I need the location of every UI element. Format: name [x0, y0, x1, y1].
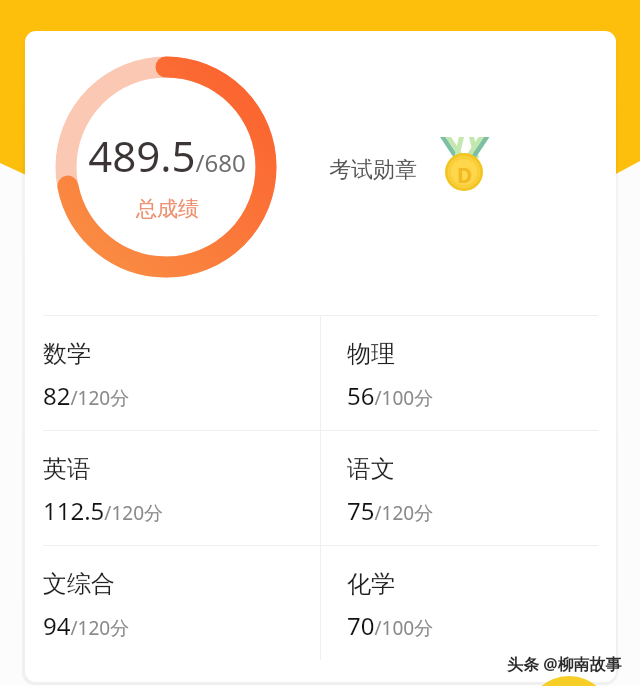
staticText: 头条 @柳南故事	[507, 653, 622, 675]
staticText: 化学	[347, 569, 395, 599]
button[interactable]: 英语	[25, 431, 320, 545]
staticText: 82/120分	[43, 379, 130, 412]
staticText: 94/120分	[43, 609, 130, 642]
staticText: D	[457, 161, 473, 190]
button[interactable]: 考试勋章	[313, 125, 503, 220]
button[interactable]: 语文	[321, 431, 616, 545]
staticText: 489.5/680	[88, 127, 246, 184]
other: Exam medal	[410, 100, 500, 195]
staticText: 英语	[43, 454, 91, 484]
staticText: 语文	[347, 454, 395, 484]
staticText: 112.5/120分	[43, 494, 164, 527]
button[interactable]: 数学	[25, 316, 320, 430]
staticText: 考试勋章	[329, 156, 417, 184]
button[interactable]: 化学	[321, 546, 616, 660]
staticText: 75/120分	[347, 494, 434, 527]
staticText: 70/100分	[347, 609, 434, 642]
staticText: 56/100分	[347, 379, 434, 412]
button[interactable]: 物理	[321, 316, 616, 430]
staticText: 数学	[43, 339, 91, 369]
staticText: 文综合	[43, 569, 115, 599]
staticText: 物理	[347, 339, 395, 369]
staticText: 总成绩	[136, 196, 199, 222]
button[interactable]: 文综合	[25, 546, 320, 660]
